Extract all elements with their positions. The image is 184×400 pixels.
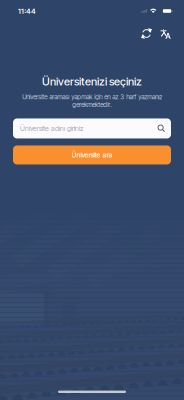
staticText: Üniversitenizi seçiniz (42, 75, 142, 88)
staticText: Üniversite ara (71, 151, 112, 159)
button[interactable]: Refresh (137, 22, 156, 40)
staticText: 11:44 (18, 7, 36, 15)
staticText: Üniversite araması yapmak için en az 3 h… (22, 93, 162, 108)
staticText: Üniversite adını giriniz (20, 124, 83, 133)
button[interactable]: Translate (156, 22, 175, 40)
button[interactable]: Üniversite ara (13, 145, 171, 164)
